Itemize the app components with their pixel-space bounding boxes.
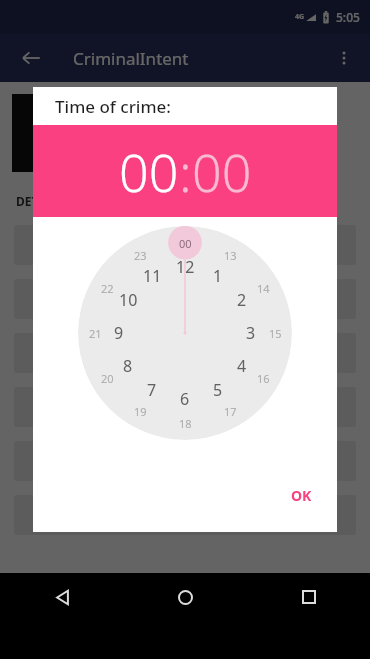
staticText: 20 bbox=[101, 371, 114, 386]
button[interactable]: Clock face, select hour bbox=[78, 226, 292, 440]
staticText: 8 bbox=[123, 355, 133, 377]
staticText: 4G bbox=[295, 12, 305, 22]
staticText: 00 bbox=[192, 136, 252, 207]
button[interactable]: OK bbox=[281, 479, 322, 512]
staticText: 11 bbox=[143, 265, 162, 287]
staticText: 9 bbox=[114, 322, 124, 344]
staticText: 10 bbox=[119, 289, 138, 311]
staticText: 13 bbox=[224, 248, 237, 263]
staticText: 18 bbox=[179, 416, 192, 431]
button[interactable]: 00 bbox=[192, 136, 252, 207]
staticText: : bbox=[179, 136, 192, 207]
staticText: 00 bbox=[179, 236, 192, 251]
staticText: 2 bbox=[237, 289, 247, 311]
staticText: 12 bbox=[176, 256, 195, 278]
staticText: 14 bbox=[257, 281, 270, 296]
staticText: 22 bbox=[101, 281, 114, 296]
staticText: 21 bbox=[89, 326, 102, 341]
button[interactable]: Recent apps bbox=[247, 573, 370, 621]
button[interactable]: Navigate up bbox=[10, 37, 52, 79]
staticText: 5:05 bbox=[336, 9, 360, 25]
staticText: 7 bbox=[147, 379, 157, 401]
staticText: DETAILS bbox=[16, 193, 64, 209]
button[interactable]: More options bbox=[323, 37, 365, 79]
staticText: 16 bbox=[257, 371, 270, 386]
staticText: 6 bbox=[180, 388, 190, 410]
staticText: 3 bbox=[246, 322, 256, 344]
staticText: 19 bbox=[134, 404, 147, 419]
button[interactable]: Home bbox=[124, 573, 247, 621]
staticText: 17 bbox=[224, 404, 237, 419]
staticText: 1 bbox=[213, 265, 223, 287]
staticText: 5 bbox=[213, 379, 223, 401]
staticText: 23 bbox=[134, 248, 147, 263]
staticText: OK bbox=[291, 486, 312, 505]
button[interactable]: Back bbox=[0, 573, 124, 621]
staticText: 15 bbox=[269, 326, 282, 341]
staticText: 4 bbox=[237, 355, 247, 377]
staticText: Time of crime: bbox=[55, 95, 171, 118]
staticText: 00 bbox=[119, 136, 179, 207]
button[interactable]: 00 bbox=[119, 136, 179, 207]
staticText: CriminalIntent bbox=[73, 47, 189, 70]
